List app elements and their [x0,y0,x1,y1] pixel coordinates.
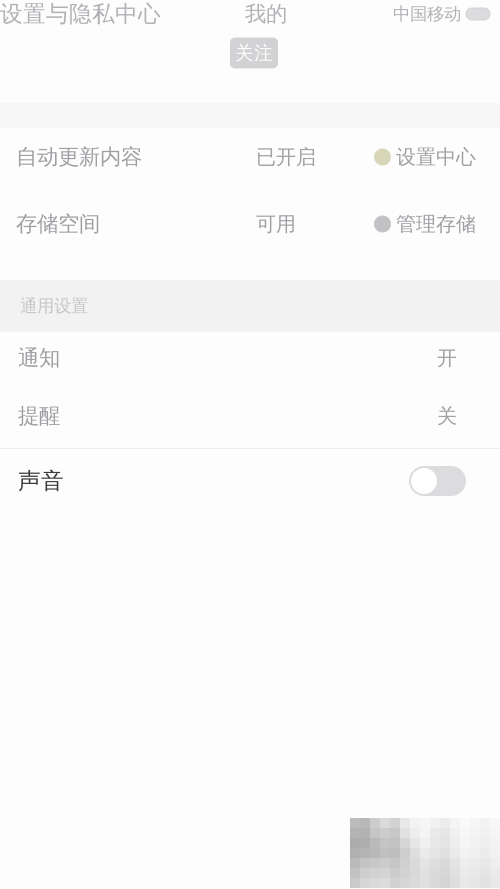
button[interactable]: 提醒 [0,384,500,448]
staticText: 自动更新内容 [16,144,142,170]
staticText: 关注 [235,41,273,64]
staticText: 存储空间 [16,211,100,237]
staticText: 通知 [18,345,60,371]
staticText: 可用 [256,212,296,236]
staticText: 设置与隐私中心 [0,0,161,28]
button[interactable]: 自动更新内容 [0,128,500,186]
staticText: 中国移动 [393,3,461,25]
staticText: 管理存储 [396,212,476,236]
staticText: 开 [437,346,457,370]
staticText: 已开启 [256,145,316,169]
button[interactable]: 存储空间 [0,186,500,262]
button[interactable]: 声音 [409,466,466,496]
button[interactable]: 通知 [0,332,500,384]
staticText: 通用设置 [20,295,88,317]
staticText: 设置中心 [396,145,476,169]
staticText: 关 [437,404,457,428]
staticText: 声音 [18,467,64,495]
staticText: 提醒 [18,403,60,429]
staticText: 我的 [245,1,287,27]
